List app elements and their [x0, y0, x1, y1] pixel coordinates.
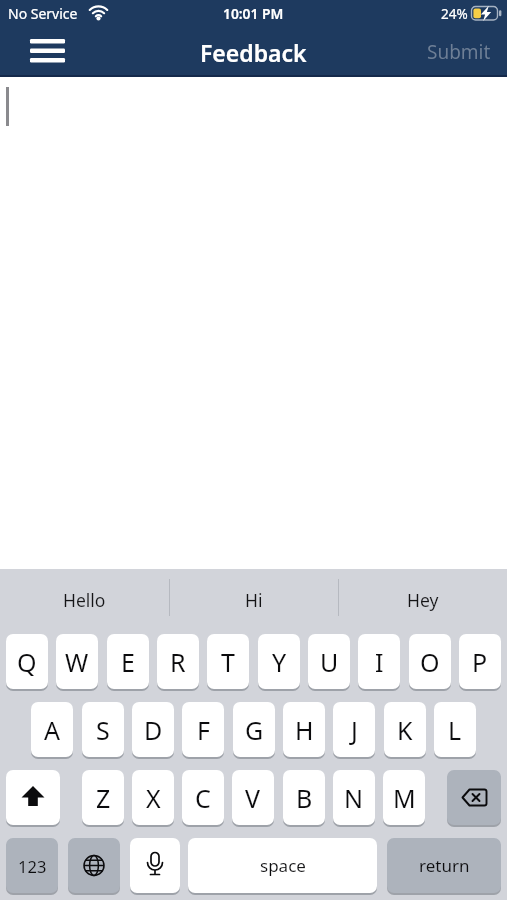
button[interactable] [130, 838, 180, 893]
button[interactable]: K [384, 702, 426, 757]
button[interactable]: Y [258, 634, 300, 689]
staticText: Feedback [200, 37, 307, 68]
staticText: N [344, 781, 364, 815]
button[interactable]: U [308, 634, 350, 689]
staticText: X [146, 781, 161, 815]
staticText: return [419, 854, 470, 877]
staticText: H [295, 713, 314, 747]
button[interactable] [447, 770, 501, 825]
button[interactable]: N [333, 770, 375, 825]
button[interactable]: Q [6, 634, 48, 689]
staticText: E [121, 645, 135, 679]
button[interactable]: D [132, 702, 174, 757]
button[interactable] [68, 838, 120, 893]
staticText: K [397, 713, 413, 747]
staticText: J [351, 713, 358, 747]
button[interactable]: X [132, 770, 174, 825]
staticText: U [320, 645, 339, 679]
staticText: R [170, 645, 186, 679]
button[interactable]: L [434, 702, 476, 757]
staticText: 24% [441, 5, 468, 23]
button[interactable] [16, 27, 80, 77]
button[interactable]: P [459, 634, 501, 689]
staticText: B [296, 781, 313, 815]
button[interactable]: Submit [427, 39, 507, 65]
staticText: D [144, 713, 163, 747]
staticText: I [375, 645, 384, 679]
staticText: V [245, 781, 261, 815]
button[interactable]: G [233, 702, 275, 757]
staticText: 123 [18, 855, 47, 877]
button[interactable]: B [283, 770, 325, 825]
button[interactable]: 123 [6, 838, 58, 893]
button[interactable]: return [387, 838, 501, 893]
button[interactable]: E [107, 634, 149, 689]
button[interactable]: space [188, 838, 377, 893]
button[interactable]: S [82, 702, 124, 757]
button[interactable]: W [56, 634, 98, 689]
button[interactable]: Z [82, 770, 124, 825]
staticText: T [221, 645, 235, 679]
button[interactable]: Hello [0, 569, 169, 631]
staticText: Submit [427, 39, 491, 65]
button[interactable]: A [31, 702, 73, 757]
button[interactable]: O [409, 634, 451, 689]
staticText: G [245, 713, 264, 747]
button[interactable]: R [157, 634, 199, 689]
button[interactable]: T [207, 634, 249, 689]
staticText: S [96, 713, 110, 747]
staticText: Hi [245, 588, 263, 612]
staticText: M [393, 781, 416, 815]
staticText: P [472, 645, 488, 679]
staticText: Z [96, 781, 111, 815]
staticText: space [260, 854, 306, 877]
staticText: Q [17, 645, 37, 679]
staticText: Hey [407, 588, 439, 612]
staticText: C [195, 781, 211, 815]
button[interactable]: J [333, 702, 375, 757]
button[interactable]: C [182, 770, 224, 825]
staticText: Hello [63, 588, 106, 612]
button[interactable]: V [232, 770, 274, 825]
staticText: Y [272, 645, 287, 679]
staticText: F [197, 713, 210, 747]
staticText: No Service [8, 4, 78, 23]
staticText: 10:01 PM [223, 4, 284, 23]
button[interactable]: H [283, 702, 325, 757]
button[interactable]: Hi [169, 569, 338, 631]
button[interactable] [6, 770, 60, 825]
button[interactable]: F [182, 702, 224, 757]
button[interactable]: M [383, 770, 425, 825]
staticText: W [65, 645, 89, 679]
staticText: L [448, 713, 462, 747]
staticText: A [44, 713, 60, 747]
button[interactable]: I [358, 634, 400, 689]
staticText: O [420, 645, 440, 679]
button[interactable]: Hey [338, 569, 507, 631]
